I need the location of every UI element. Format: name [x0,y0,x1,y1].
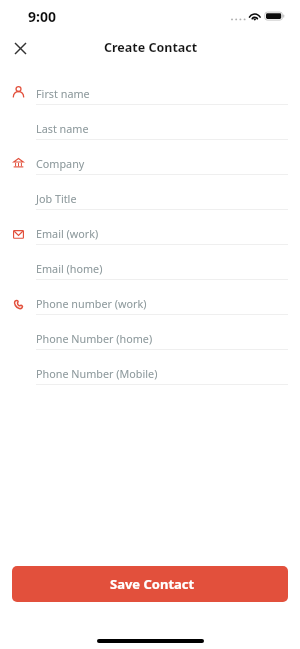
button[interactable]: Phone Number (home) [0,315,300,350]
staticText: Save Contact [110,575,195,593]
button[interactable]: Job Title [0,175,300,210]
staticText: Create Contact [104,39,198,56]
staticText: Phone Number (home) [36,331,153,346]
button[interactable]: Company [0,140,300,175]
staticText: Email (home) [36,261,103,276]
button[interactable]: Email (home) [0,245,300,280]
button[interactable]: Save Contact [12,566,288,602]
staticText: Company [36,156,85,171]
staticText: Job Title [36,191,77,206]
button[interactable]: Phone Number (Mobile) [0,350,300,385]
staticText: First name [36,86,90,101]
staticText: Last name [36,121,89,136]
staticText: Phone number (work) [36,296,147,311]
button[interactable]: Last name [0,105,300,140]
button[interactable]: First name [0,70,300,105]
staticText: Phone Number (Mobile) [36,366,158,381]
staticText: Email (work) [36,226,99,241]
button[interactable]: Close [8,36,32,60]
staticText: 9:00 [28,7,56,26]
button[interactable]: Email (work) [0,210,300,245]
button[interactable]: Phone number (work) [0,280,300,315]
